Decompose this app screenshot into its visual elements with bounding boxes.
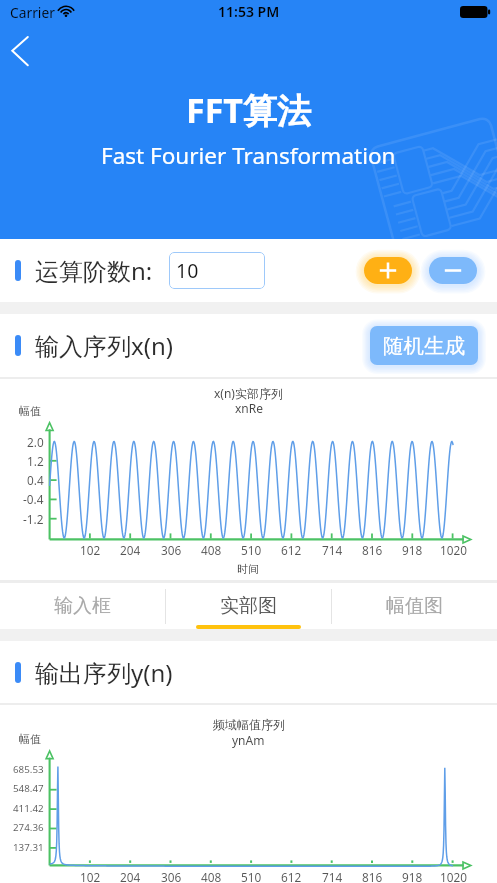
staticText: 幅值	[19, 404, 41, 418]
staticText: -0.4	[23, 491, 44, 507]
staticText: 102	[80, 542, 101, 558]
staticText: x(n)实部序列	[214, 385, 283, 401]
staticText: 运算阶数n:	[35, 254, 153, 287]
button[interactable]: 幅值图	[332, 583, 497, 629]
staticText: 实部图	[220, 594, 277, 618]
staticText: 714	[322, 869, 343, 883]
staticText: 幅值图	[386, 594, 443, 618]
staticText: 幅值	[19, 732, 41, 746]
staticText: 137.31	[13, 841, 44, 854]
staticText: Fast Fourier Transformation	[101, 140, 396, 171]
staticText: 612	[281, 542, 302, 558]
button[interactable]: 输入框	[0, 583, 165, 629]
staticText: 频域幅值序列	[213, 717, 285, 732]
staticText: 714	[322, 542, 343, 558]
staticText: 0.4	[27, 472, 44, 488]
staticText: 816	[362, 869, 383, 883]
staticText: 11:53 PM	[218, 2, 280, 21]
button[interactable]: 随机生成	[363, 319, 485, 372]
button[interactable]: Decrease	[422, 250, 484, 291]
staticText: xnRe	[235, 400, 263, 416]
staticText: 随机生成	[383, 333, 465, 359]
staticText: 411.42	[13, 802, 44, 815]
staticText: 306	[161, 869, 182, 883]
staticText: 685.53	[13, 763, 44, 776]
staticText: FFT算法	[186, 87, 311, 133]
staticText: 612	[281, 869, 302, 883]
staticText: 输出序列y(n)	[35, 656, 173, 689]
button[interactable]: Increase	[357, 250, 419, 291]
staticText: Carrier	[10, 3, 55, 22]
staticText: 816	[362, 542, 383, 558]
staticText: ynAm	[232, 732, 265, 748]
staticText: 2.0	[27, 434, 44, 450]
staticText: 408	[201, 542, 222, 558]
staticText: 10	[176, 257, 199, 284]
staticText: 918	[402, 869, 423, 883]
button[interactable]: 实部图	[166, 583, 331, 629]
staticText: 274.36	[13, 821, 44, 834]
staticText: 102	[80, 869, 101, 883]
staticText: 918	[402, 542, 423, 558]
staticText: 408	[201, 869, 222, 883]
staticText: 输入序列x(n)	[35, 329, 173, 362]
staticText: 306	[161, 542, 182, 558]
staticText: 时间	[237, 562, 259, 576]
button[interactable]: 10	[169, 252, 265, 289]
staticText: 510	[241, 542, 262, 558]
staticText: 输入框	[54, 594, 111, 618]
staticText: 204	[120, 542, 141, 558]
staticText: 510	[241, 869, 262, 883]
staticText: -1.2	[23, 511, 44, 527]
staticText: 204	[120, 869, 141, 883]
button[interactable]: Back	[0, 29, 44, 73]
staticText: 1020	[440, 869, 467, 883]
staticText: 1.2	[27, 453, 44, 469]
staticText: 548.47	[13, 782, 44, 795]
staticText: 1020	[440, 542, 467, 558]
